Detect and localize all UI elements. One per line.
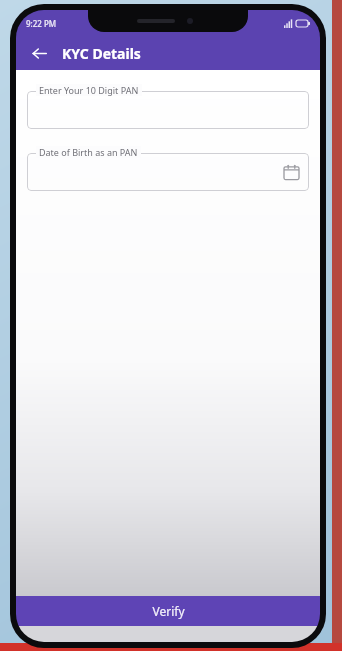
button[interactable]: Pick date [280, 161, 302, 183]
staticText: Verify [152, 603, 185, 619]
staticText: Date of Birth as an PAN [39, 146, 138, 158]
button[interactable]: Verify [16, 596, 320, 626]
staticText: KYC Details [62, 44, 141, 63]
staticText: 9:22 PM [26, 18, 57, 29]
button[interactable]: Enter Your 10 Digit PAN [27, 84, 309, 129]
button[interactable]: Pick date [27, 146, 309, 191]
button[interactable]: Back [24, 38, 54, 68]
staticText: Enter Your 10 Digit PAN [39, 84, 139, 96]
